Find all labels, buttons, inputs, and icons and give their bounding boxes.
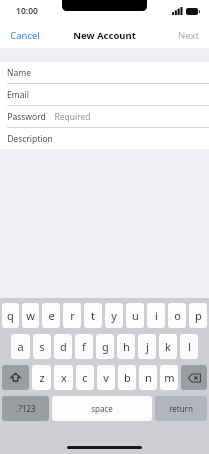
staticText: space: [91, 403, 113, 414]
button[interactable]: b: [118, 365, 136, 390]
button[interactable]: z: [32, 365, 51, 390]
button[interactable]: h: [117, 334, 135, 359]
button[interactable]: c: [76, 365, 94, 390]
button[interactable]: i: [147, 303, 165, 328]
staticText: k: [165, 339, 171, 354]
staticText: u: [132, 308, 139, 323]
staticText: l: [188, 339, 191, 354]
staticText: New Account: [73, 29, 136, 42]
staticText: r: [70, 308, 75, 323]
staticText: Required: [54, 111, 91, 123]
staticText: f: [82, 339, 86, 354]
staticText: o: [174, 308, 181, 323]
staticText: return: [169, 403, 193, 414]
button[interactable]: t: [84, 303, 102, 328]
button[interactable]: r: [63, 303, 81, 328]
staticText: 10:00: [16, 5, 38, 17]
staticText: t: [91, 308, 95, 323]
button[interactable]: w: [22, 303, 39, 328]
staticText: z: [39, 370, 45, 385]
staticText: b: [124, 370, 131, 385]
button[interactable]: x: [54, 365, 73, 390]
staticText: q: [7, 308, 14, 323]
button[interactable]: j: [138, 334, 156, 359]
button[interactable]: Backspace: [181, 365, 207, 390]
button[interactable]: p: [189, 303, 207, 328]
button[interactable]: a: [11, 334, 30, 359]
button[interactable]: .?123: [2, 396, 49, 421]
button[interactable]: k: [159, 334, 177, 359]
staticText: Password: [7, 111, 46, 123]
button[interactable]: l: [180, 334, 198, 359]
staticText: p: [195, 308, 202, 323]
button[interactable]: v: [97, 365, 115, 390]
staticText: n: [145, 370, 152, 385]
staticText: w: [26, 308, 35, 323]
staticText: g: [102, 339, 109, 354]
staticText: s: [39, 339, 45, 354]
button[interactable]: m: [160, 365, 178, 390]
staticText: .?123: [16, 403, 36, 414]
button[interactable]: Description: [0, 128, 209, 149]
staticText: Email: [7, 89, 29, 101]
staticText: d: [60, 339, 67, 354]
staticText: Description: [7, 133, 53, 145]
staticText: Next: [178, 29, 199, 42]
button[interactable]: s: [33, 334, 51, 359]
staticText: Name: [7, 67, 31, 79]
button[interactable]: return: [155, 396, 207, 421]
staticText: x: [61, 370, 67, 385]
button[interactable]: Password: [0, 106, 209, 127]
button[interactable]: u: [126, 303, 144, 328]
button[interactable]: space: [52, 396, 152, 421]
button[interactable]: g: [96, 334, 114, 359]
button[interactable]: n: [139, 365, 157, 390]
button[interactable]: y: [105, 303, 123, 328]
staticText: j: [146, 339, 149, 354]
button[interactable]: o: [168, 303, 186, 328]
button[interactable]: d: [54, 334, 72, 359]
button[interactable]: e: [42, 303, 60, 328]
staticText: e: [48, 308, 55, 323]
staticText: h: [123, 339, 130, 354]
button[interactable]: Name: [0, 62, 209, 83]
staticText: Cancel: [10, 29, 40, 42]
button[interactable]: f: [75, 334, 93, 359]
staticText: y: [111, 308, 117, 323]
staticText: v: [103, 370, 109, 385]
button[interactable]: Next: [168, 25, 209, 46]
staticText: c: [82, 370, 88, 385]
button[interactable]: Shift: [2, 365, 29, 390]
staticText: m: [164, 370, 175, 385]
staticText: a: [17, 339, 24, 354]
button[interactable]: Email: [0, 84, 209, 105]
button[interactable]: q: [2, 303, 19, 328]
button[interactable]: Cancel: [0, 25, 50, 46]
staticText: i: [155, 308, 158, 323]
